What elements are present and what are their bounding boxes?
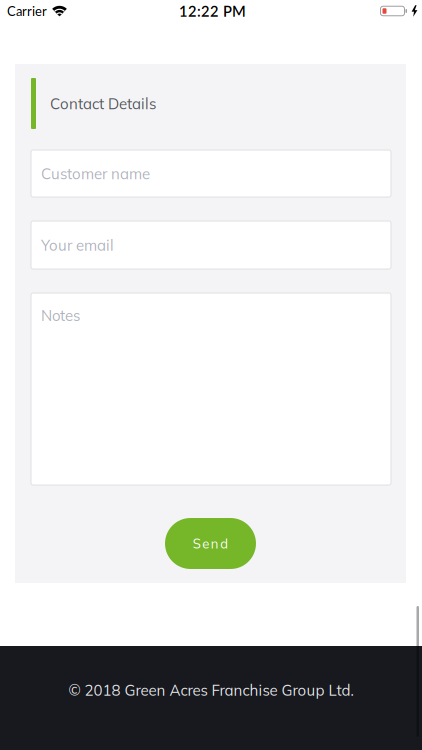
button[interactable]: Send xyxy=(165,518,256,569)
button[interactable]: Notes xyxy=(31,293,391,485)
staticText: Send xyxy=(193,535,228,552)
button[interactable]: Customer name xyxy=(31,150,391,197)
staticText: Your email xyxy=(41,236,114,254)
button[interactable]: Your email xyxy=(31,221,391,269)
staticText: Customer name xyxy=(41,164,150,183)
staticText: Carrier xyxy=(7,3,47,19)
staticText: Contact Details xyxy=(50,94,156,113)
staticText: Notes xyxy=(41,306,80,325)
staticText: 12:22 PM xyxy=(179,2,246,20)
staticText: © 2018 Green Acres Franchise Group Ltd. xyxy=(68,681,353,699)
